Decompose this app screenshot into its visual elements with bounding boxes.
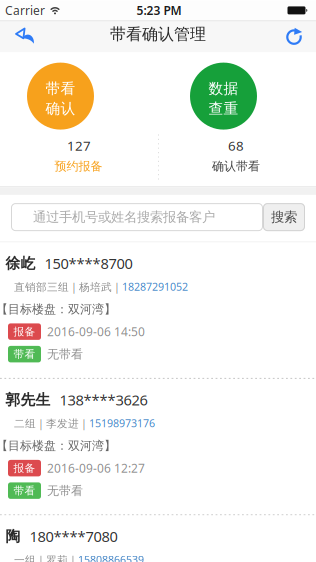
button[interactable]: 通过手机号或姓名搜索报备客户 xyxy=(11,203,263,231)
button[interactable]: 刷新 xyxy=(280,22,308,51)
staticText: 15198973176 xyxy=(89,416,155,430)
staticText: 2016-09-06 12:27 xyxy=(47,460,145,476)
staticText: 15808866539 xyxy=(78,553,144,562)
button[interactable]: 返回 xyxy=(8,20,42,50)
staticText: 通过手机号或姓名搜索报备客户 xyxy=(33,209,215,225)
staticText: 郭先生 xyxy=(5,391,50,409)
staticText: 2016-09-06 14:50 xyxy=(47,324,145,340)
staticText: 无带看 xyxy=(47,347,83,361)
button[interactable]: 徐屹 xyxy=(0,242,316,379)
staticText: 确认 xyxy=(45,100,75,118)
button[interactable]: 陶 xyxy=(0,515,316,562)
staticText: 二组 | 李发进 | xyxy=(14,416,89,430)
staticText: 【目标楼盘：双河湾】 xyxy=(0,438,116,453)
staticText: 陶 xyxy=(5,527,20,545)
staticText: Carrier xyxy=(5,2,45,18)
staticText: 数据 xyxy=(208,80,238,98)
staticText: 徐屹 xyxy=(5,254,35,272)
staticText: 直销部三组 | 杨培武 | xyxy=(14,280,122,294)
staticText: 无带看 xyxy=(47,483,83,498)
staticText: 68 xyxy=(228,137,244,154)
staticText: 一组 | 罗莉 | xyxy=(14,553,78,562)
staticText: 确认带看 xyxy=(212,159,260,174)
staticText: 127 xyxy=(67,137,91,154)
staticText: 18287291052 xyxy=(122,280,188,294)
button[interactable]: 数据 xyxy=(190,63,257,130)
button[interactable]: 郭先生 xyxy=(0,379,316,515)
staticText: 150****8700 xyxy=(44,254,132,273)
staticText: 180****7080 xyxy=(29,527,117,546)
staticText: 报备 xyxy=(13,462,35,475)
button[interactable]: 15808866539 xyxy=(78,553,144,562)
staticText: 报备 xyxy=(13,325,35,338)
staticText: 带看 xyxy=(13,484,35,497)
staticText: 带看确认管理 xyxy=(110,24,206,44)
staticText: 138****3626 xyxy=(59,390,147,410)
staticText: 【目标楼盘：双河湾】 xyxy=(0,302,116,316)
button[interactable]: 搜索 xyxy=(263,203,305,231)
button[interactable]: 带看 xyxy=(27,63,94,130)
staticText: 带看 xyxy=(13,348,35,361)
staticText: 搜索 xyxy=(271,209,297,225)
button[interactable]: 15198973176 xyxy=(89,416,155,430)
staticText: 预约报备 xyxy=(54,159,102,174)
staticText: 查重 xyxy=(208,100,238,118)
button[interactable]: 18287291052 xyxy=(122,280,188,294)
staticText: 5:23 PM xyxy=(136,2,181,18)
staticText: 带看 xyxy=(45,80,75,98)
